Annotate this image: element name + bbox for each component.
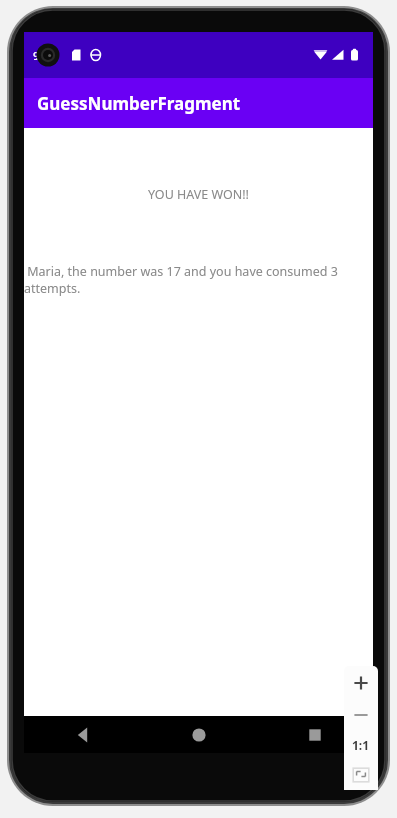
staticText: GuessNumberFragment bbox=[37, 92, 241, 115]
button[interactable]: Actual size bbox=[344, 730, 378, 760]
button[interactable]: Home bbox=[141, 716, 257, 753]
staticText: Maria, the number was 17 and you have co… bbox=[24, 263, 361, 296]
button[interactable]: Fit to screen bbox=[344, 760, 378, 790]
staticText: 9:14 bbox=[33, 48, 55, 63]
staticText: 1:1 bbox=[352, 737, 370, 753]
button[interactable]: Back bbox=[24, 716, 141, 753]
button[interactable]: Recent apps bbox=[257, 716, 373, 753]
button[interactable]: Zoom in bbox=[344, 666, 378, 700]
staticText: YOU HAVE WON!! bbox=[24, 186, 373, 203]
button[interactable]: Zoom out bbox=[344, 700, 378, 730]
